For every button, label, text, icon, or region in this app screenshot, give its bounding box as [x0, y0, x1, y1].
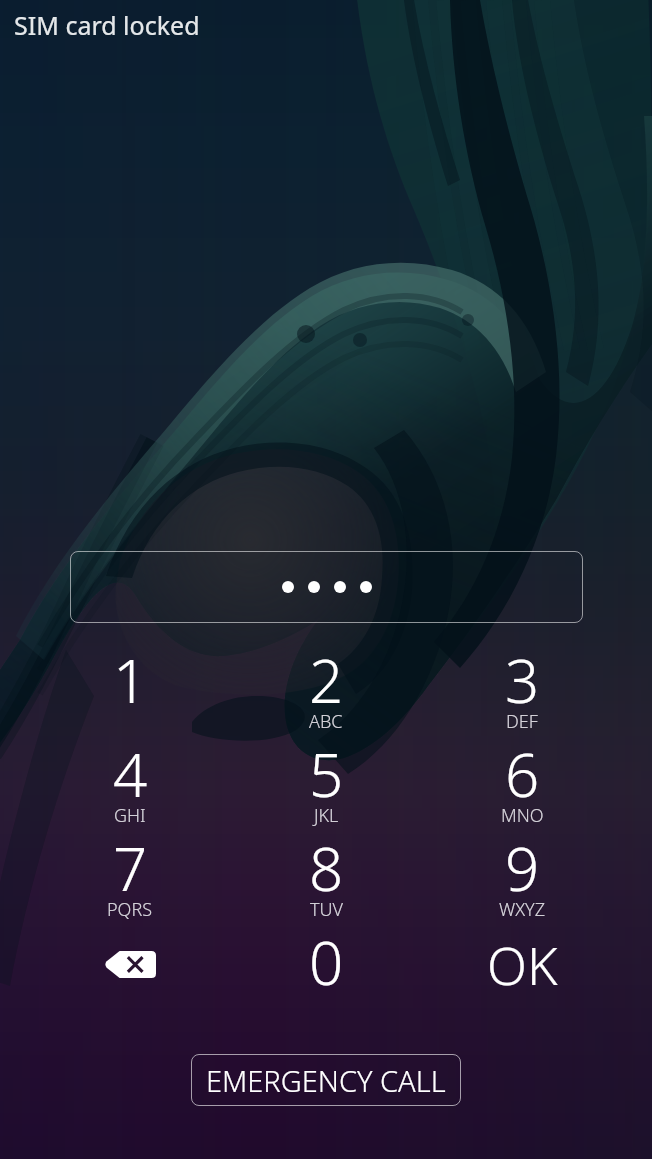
- staticText: EMERGENCY CALL: [206, 1061, 446, 1100]
- staticText: 1: [113, 639, 148, 721]
- staticText: GHI: [114, 803, 146, 828]
- staticText: 5: [309, 733, 344, 815]
- button[interactable]: 2: [228, 651, 424, 745]
- staticText: MNO: [501, 803, 544, 828]
- staticText: WXYZ: [499, 897, 546, 922]
- staticText: 6: [505, 733, 540, 815]
- staticText: SIM card locked: [14, 8, 200, 42]
- staticText: 2: [309, 639, 344, 721]
- button[interactable]: 6: [424, 745, 620, 839]
- button[interactable]: 3: [424, 651, 620, 745]
- staticText: JKL: [314, 803, 339, 828]
- button[interactable]: 1: [32, 651, 228, 745]
- staticText: OK: [487, 929, 558, 1000]
- staticText: PQRS: [107, 897, 153, 922]
- button[interactable]: EMERGENCY CALL: [191, 1054, 461, 1106]
- staticText: TUV: [310, 897, 343, 922]
- staticText: 4: [113, 733, 148, 815]
- staticText: 0: [309, 921, 344, 1003]
- button[interactable]: 7: [32, 839, 228, 933]
- staticText: 9: [505, 827, 540, 909]
- button[interactable]: 4: [32, 745, 228, 839]
- staticText: 8: [309, 827, 344, 909]
- button[interactable]: Delete: [32, 933, 228, 1027]
- button[interactable]: 8: [228, 839, 424, 933]
- staticText: ABC: [309, 709, 343, 734]
- staticText: 3: [505, 639, 540, 721]
- button[interactable]: OK: [424, 933, 620, 1027]
- staticText: 7: [113, 827, 148, 909]
- button[interactable]: 9: [424, 839, 620, 933]
- button[interactable]: 0: [228, 933, 424, 1027]
- staticText: DEF: [506, 709, 538, 734]
- button[interactable]: 5: [228, 745, 424, 839]
